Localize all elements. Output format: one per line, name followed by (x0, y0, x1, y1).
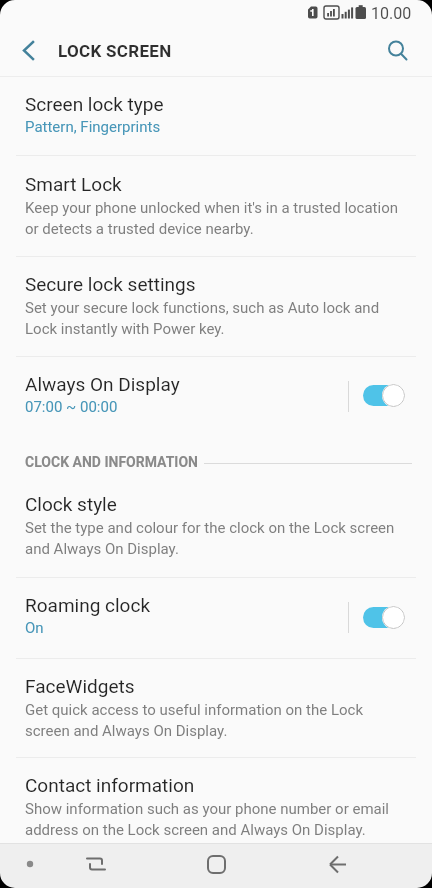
staticText: LOCK SCREEN (58, 41, 172, 61)
button[interactable] (312, 843, 360, 888)
staticText: On (25, 619, 44, 637)
button[interactable]: Smart Lock (0, 156, 432, 256)
staticText: CLOCK AND INFORMATION (25, 454, 198, 470)
staticText: 10.00 (371, 4, 412, 23)
staticText: Clock style (25, 493, 117, 515)
button[interactable]: Secure lock settings (0, 257, 432, 356)
button[interactable]: FaceWidgets (0, 659, 432, 757)
staticText: Get quick access to useful information o… (25, 701, 363, 739)
staticText: 07:00 ~ 00:00 (25, 398, 118, 416)
staticText: Keep your phone unlocked when it's in a … (25, 199, 399, 237)
button[interactable]: Roaming clock (0, 578, 345, 658)
button[interactable]: Always On Display (0, 357, 345, 435)
button[interactable]: Contact information (0, 758, 432, 843)
button[interactable] (72, 843, 120, 888)
staticText: Roaming clock (25, 594, 151, 616)
button[interactable] (192, 843, 240, 888)
staticText: FaceWidgets (25, 675, 135, 697)
button[interactable]: Screen lock type (0, 77, 432, 155)
staticText: Set the type and colour for the clock on… (25, 519, 395, 557)
staticText: Contact information (25, 774, 195, 796)
button[interactable]: Clock style (0, 477, 432, 577)
staticText: Secure lock settings (25, 273, 196, 295)
staticText: Always On Display (25, 373, 180, 395)
staticText: Show information such as your phone numb… (25, 800, 390, 838)
staticText: Pattern, Fingerprints (25, 118, 161, 136)
button[interactable] (376, 30, 416, 70)
button[interactable] (8, 35, 48, 67)
button[interactable] (363, 606, 405, 629)
button[interactable] (363, 384, 405, 407)
staticText: Screen lock type (25, 93, 164, 115)
staticText: Smart Lock (25, 173, 122, 195)
staticText: Set your secure lock functions, such as … (25, 299, 380, 337)
